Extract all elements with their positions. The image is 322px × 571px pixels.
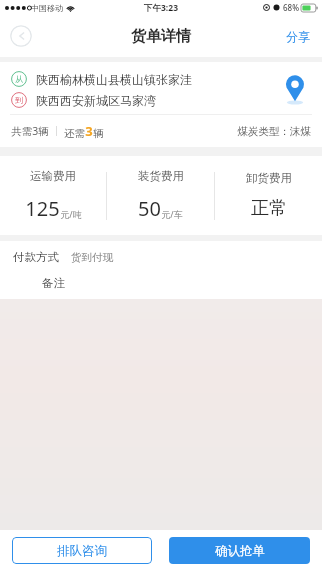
button[interactable]: 确认抢单 [169,537,310,564]
staticText: 付款方式 [13,250,59,264]
button[interactable]: 装货费用 [107,169,214,222]
staticText: 分享 [286,29,310,44]
staticText: 排队咨询 [57,543,107,559]
staticText: 从 [15,74,23,84]
staticText: 煤炭类型：沫煤 [237,125,311,138]
button[interactable]: Back [10,25,32,47]
staticText: 货单详情 [131,27,191,46]
staticText: 元/吨 [60,208,82,220]
staticText: 陕西西安新城区马家湾 [36,93,156,108]
staticText: 下午3:23 [144,2,178,14]
button[interactable]: 从 [0,62,322,147]
staticText: 还需 [64,127,85,140]
staticText: 卸货费用 [246,171,292,185]
staticText: 50 [138,195,161,222]
staticText: 备注 [42,276,65,290]
staticText: 运输费用 [30,169,76,183]
staticText: 陕西榆林横山县横山镇张家洼 [36,72,192,87]
button[interactable]: 卸货费用 [215,171,322,220]
staticText: 125 [25,195,60,222]
button[interactable]: 运输费用 [0,169,106,222]
staticText: 货到付现 [71,251,113,264]
button[interactable]: 分享 [274,21,322,52]
button[interactable]: 排队咨询 [12,537,152,564]
staticText: 共需3辆 [11,124,49,138]
staticText: 中国移动 [31,3,63,13]
staticText: 68% [283,2,299,13]
staticText: 辆 [93,127,104,140]
staticText: 正常 [251,197,287,220]
staticText: 到 [15,95,23,105]
staticText: 装货费用 [138,169,184,183]
staticText: 3 [85,122,93,140]
staticText: 元/车 [161,208,183,220]
staticText: 确认抢单 [215,543,265,559]
button[interactable]: Map location [278,70,312,108]
